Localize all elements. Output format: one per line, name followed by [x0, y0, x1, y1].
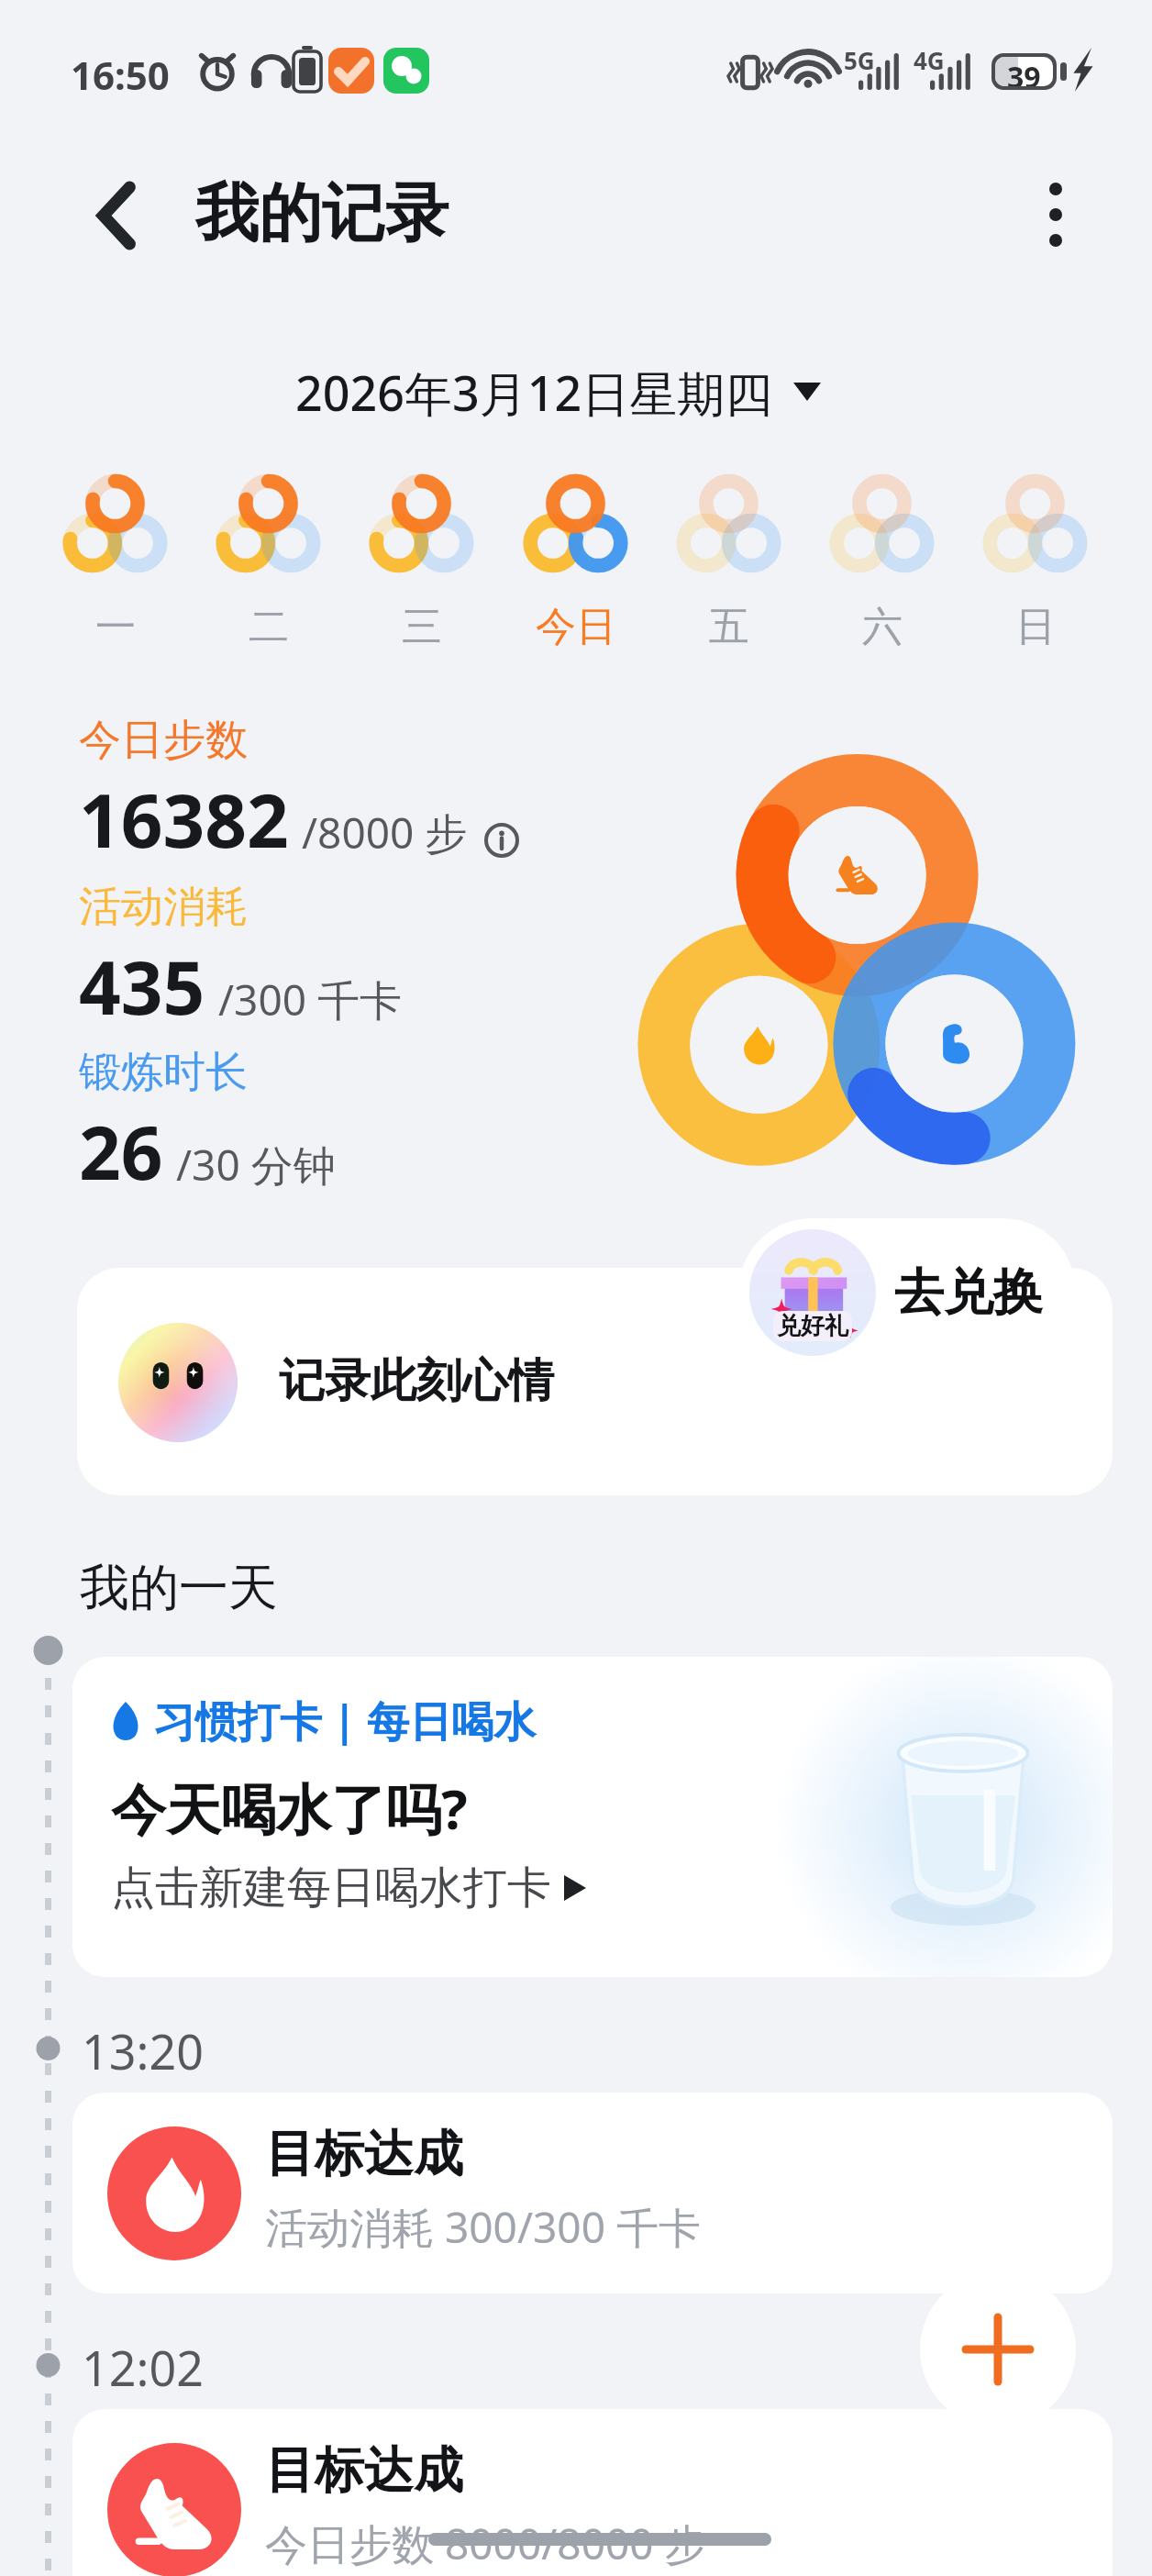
button[interactable]: 目标达成: [72, 2409, 1113, 2576]
staticText: 我的一天: [80, 1557, 278, 1619]
staticText: 今天喝水了吗?: [111, 1771, 468, 1846]
staticText: 一: [95, 602, 136, 652]
staticText: /30 分钟: [176, 1136, 336, 1194]
staticText: 目标达成: [265, 2123, 463, 2185]
staticText: 今日: [536, 602, 616, 652]
staticText: 二: [249, 602, 289, 652]
staticText: 日: [1015, 602, 1056, 652]
staticText: 13:20: [82, 2018, 204, 2083]
staticText: 去兑换: [894, 1261, 1043, 1324]
staticText: /300 千卡: [218, 971, 403, 1028]
staticText: 兑好礼: [777, 1311, 848, 1341]
button[interactable]: 今日: [499, 454, 652, 652]
staticText: 活动消耗: [79, 881, 248, 934]
staticText: 六: [862, 602, 903, 652]
button[interactable]: More options: [1004, 163, 1107, 266]
staticText: 习惯打卡 | 每日喝水: [153, 1692, 537, 1749]
staticText: 今日步数 8000/8000 步: [265, 2515, 707, 2572]
staticText: 2026年3月12日星期四: [295, 360, 773, 425]
staticText: 记录此刻心情: [279, 1352, 554, 1410]
staticText: 435: [79, 936, 205, 1036]
staticText: 4G: [914, 44, 945, 76]
staticText: 16:50: [71, 49, 170, 101]
button[interactable]: 日: [958, 454, 1112, 652]
staticText: 12:02: [82, 2335, 204, 2400]
button[interactable]: 二: [192, 454, 345, 652]
staticText: 活动消耗 300/300 千卡: [265, 2198, 701, 2256]
staticText: 三: [402, 602, 442, 652]
staticText: 点击新建每日喝水打卡: [111, 1860, 551, 1915]
staticText: 锻炼时长: [79, 1046, 248, 1099]
staticText: 目标达成: [265, 2439, 463, 2502]
staticText: 5G: [844, 44, 875, 76]
button[interactable]: Add record: [920, 2271, 1076, 2427]
button[interactable]: 六: [805, 454, 958, 652]
staticText: 26: [79, 1101, 163, 1201]
button[interactable]: 兑好礼: [738, 1218, 1076, 1366]
staticText: 39: [1007, 57, 1041, 86]
staticText: 16382: [79, 769, 289, 869]
staticText: 五: [709, 602, 749, 652]
button[interactable]: Back: [64, 163, 169, 268]
button[interactable]: 一: [39, 454, 192, 652]
button[interactable]: 2026年3月12日星期四: [295, 356, 821, 427]
button[interactable]: 记录此刻心情: [77, 1268, 1113, 1495]
button[interactable]: 三: [345, 454, 498, 652]
staticText: /8000 步: [302, 804, 468, 861]
button[interactable]: 习惯打卡 | 每日喝水: [72, 1657, 1113, 1977]
staticText: 我的记录: [195, 174, 449, 254]
staticText: 今日步数: [79, 714, 248, 767]
button[interactable]: 五: [652, 454, 805, 652]
button[interactable]: 目标达成: [72, 2093, 1113, 2293]
